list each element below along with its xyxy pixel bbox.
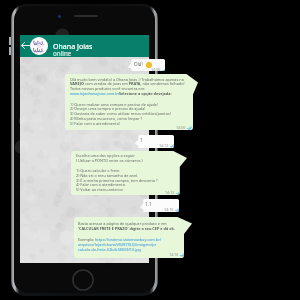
staticText: 14:12 xyxy=(165,190,175,195)
staticText: Ohana Joias xyxy=(53,41,93,51)
staticText: Escolha uma das opções a seguir xyxy=(76,153,135,158)
button[interactable]: 1.1 xyxy=(140,199,179,212)
button[interactable]: Basta acessar a página de qualquer produ… xyxy=(74,217,192,258)
staticText: Exemplo: xyxy=(78,237,95,242)
staticText: Todos nossos produtos você encontra em: xyxy=(70,86,146,91)
staticText: 4) Falar com o atendimento. xyxy=(76,182,127,187)
staticText: calculo-de-frete-62b4c58603f16.jpg xyxy=(78,247,141,252)
staticText: Basta acessar a página de qualquer produ… xyxy=(78,221,167,226)
staticText: 2) Não sei o meu tamanho de anel. xyxy=(76,173,139,178)
staticText: Olá! xyxy=(134,61,143,67)
button[interactable]: Back xyxy=(20,37,31,54)
staticText: 14:15 xyxy=(164,207,174,212)
button[interactable]: Profile photo xyxy=(30,37,48,55)
staticText: 1) Quero realizar uma compra e preciso d… xyxy=(70,102,158,107)
staticText: Olá muito bem vinda(o) a Ohana Joias :) … xyxy=(70,77,184,82)
staticText: 14:00 xyxy=(151,67,161,71)
staticText: Selecione a opção desejada: xyxy=(119,91,172,96)
staticText: www.lojaohanajoias.com.br xyxy=(70,91,120,96)
button[interactable]: 1 xyxy=(135,135,174,148)
staticText: arquivos/lojas/ohana/t6U87XLQ/imagem/pr xyxy=(78,242,157,247)
staticText: 3) Gostaria de saber como utilizar meus … xyxy=(70,111,171,116)
staticText: 14:00 xyxy=(176,125,186,130)
staticText: 3) É a minha primeira compra, tem descon… xyxy=(76,178,158,183)
staticText: 14:12 xyxy=(159,143,169,148)
staticText: online xyxy=(53,49,72,58)
staticText: VAREJO com vendas de joias em PRATA, não… xyxy=(70,81,185,86)
staticText: 2) Desejei uma compra e preciso de ajuda… xyxy=(70,106,146,111)
staticText: 1 xyxy=(140,137,143,143)
staticText: 5) Voltar ao menu anterior. xyxy=(76,187,124,192)
staticText: https://sistema.sistemawbuy.com.br/ xyxy=(95,237,162,242)
button[interactable]: Back xyxy=(20,35,149,57)
staticText: 4) Minha prata escureceu, como limpar ? xyxy=(70,116,143,121)
staticText: 5) Falar com o atendimento! xyxy=(70,121,121,126)
staticText: ( Utilizar a PONTO entre os números ) xyxy=(76,158,143,163)
staticText: 14:16 xyxy=(169,252,179,257)
staticText: 1.1 xyxy=(145,201,152,207)
button[interactable]: Escolha uma das opções a seguir xyxy=(71,151,187,195)
button[interactable]: Olá muito bem vinda(o) a Ohana Joias :) … xyxy=(65,74,198,130)
staticText: 'CALCULAR FRETE E PRAZO' digite o seu CE… xyxy=(78,226,175,231)
staticText: 1) Quero calcular o frete. xyxy=(76,168,121,173)
button[interactable]: Olá! xyxy=(128,59,165,71)
